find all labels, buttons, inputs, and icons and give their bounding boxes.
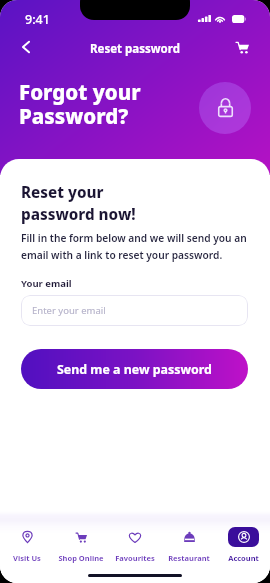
staticText: Send me a new password bbox=[57, 361, 212, 378]
button[interactable]: Shop Online bbox=[54, 527, 108, 563]
button[interactable]: Cart bbox=[230, 35, 254, 59]
staticText: Reset your password now! bbox=[21, 182, 136, 225]
staticText: Account bbox=[228, 553, 259, 563]
button[interactable]: Enter your email bbox=[21, 295, 248, 326]
staticText: Restaurant bbox=[168, 553, 210, 563]
button[interactable]: Restaurant bbox=[162, 527, 216, 563]
staticText: Enter your email bbox=[32, 304, 106, 317]
staticText: Your email bbox=[21, 277, 72, 290]
staticText: Fill in the form below and we will send … bbox=[21, 231, 248, 262]
button[interactable]: Send me a new password bbox=[21, 349, 248, 389]
staticText: Forgot your Password? bbox=[19, 78, 141, 130]
button[interactable]: Account bbox=[216, 527, 270, 563]
staticText: Visit Us bbox=[13, 553, 41, 563]
staticText: Shop Online bbox=[58, 553, 104, 563]
button[interactable]: Favourites bbox=[108, 527, 162, 563]
staticText: Reset password bbox=[90, 41, 180, 57]
button[interactable]: Visit Us bbox=[0, 527, 54, 563]
button[interactable]: Back bbox=[14, 35, 38, 59]
staticText: Favourites bbox=[115, 553, 155, 563]
staticText: 9:41 bbox=[25, 11, 50, 28]
